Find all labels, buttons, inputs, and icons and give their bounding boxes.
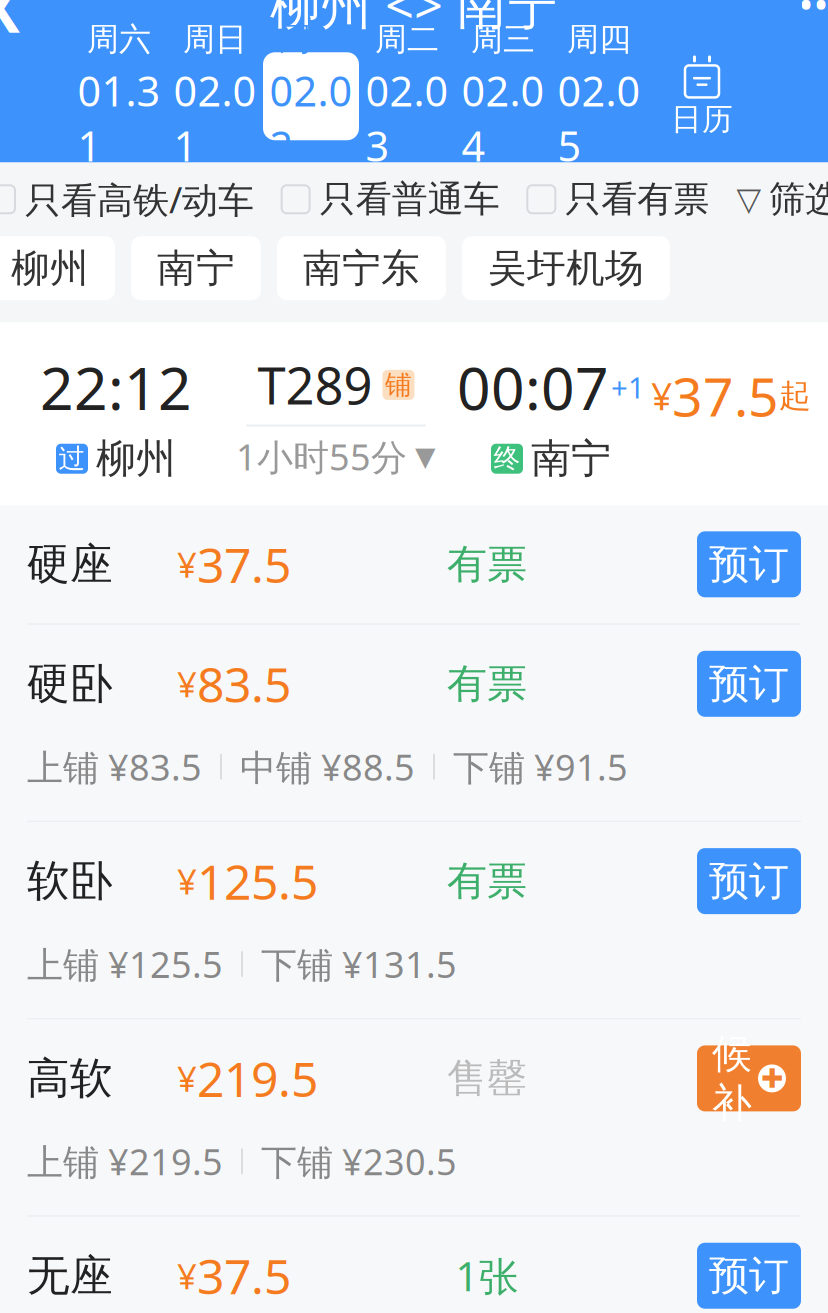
staticText: ▼ <box>415 441 436 472</box>
button[interactable]: 候补 <box>697 1045 801 1111</box>
staticText: 过 <box>58 442 85 475</box>
staticText: ❮ <box>0 0 27 31</box>
staticText: 83.5 <box>197 652 291 716</box>
button[interactable]: 周四 <box>551 52 647 140</box>
staticText: 125.5 <box>197 849 318 913</box>
staticText: T289 <box>257 351 372 418</box>
staticText: 柳州 <box>11 244 89 292</box>
staticText: 02.04 <box>461 63 544 173</box>
staticText: 周日 <box>183 20 247 59</box>
staticText: 00:07 <box>457 348 609 426</box>
staticText: 02.03 <box>365 63 448 173</box>
staticText: 有票 <box>447 857 527 906</box>
staticText: ¥ <box>177 541 197 587</box>
staticText: ••• <box>798 0 828 31</box>
staticText: 只看高铁/动车 <box>25 175 254 223</box>
staticText: 柳州 <box>96 434 176 483</box>
staticText: 售罄 <box>447 1054 527 1103</box>
staticText: 周六 <box>87 20 151 59</box>
button[interactable]: ▽ <box>737 177 828 221</box>
staticText: 周二 <box>375 20 439 59</box>
staticText: 南宁 <box>531 434 611 483</box>
staticText: 中铺 ¥88.5 <box>240 743 415 791</box>
staticText: 预订 <box>709 1251 789 1300</box>
button[interactable]: Calendar <box>647 46 757 146</box>
button[interactable]: 预订 <box>697 848 801 914</box>
staticText: ¥ <box>177 1055 197 1101</box>
staticText: ¥ <box>651 371 672 421</box>
staticText: 37.5 <box>672 360 779 431</box>
staticText: 有票 <box>447 540 527 589</box>
staticText: 22:12 <box>40 348 192 426</box>
staticText: 02.02 <box>269 63 352 173</box>
staticText: 起 <box>779 376 811 415</box>
button[interactable]: 只看普通车 <box>282 177 500 221</box>
staticText: ▽ <box>736 181 761 217</box>
staticText: 预订 <box>709 857 789 906</box>
button[interactable]: 周六 <box>71 52 167 140</box>
button[interactable]: 周日 <box>167 52 263 140</box>
staticText: 01.31 <box>77 63 160 173</box>
staticText: 终 <box>493 442 520 475</box>
staticText: 只看普通车 <box>320 177 500 221</box>
button[interactable]: More options <box>775 0 828 42</box>
staticText: 1张 <box>455 1249 518 1302</box>
staticText: 南宁 <box>157 244 235 292</box>
staticText: 只看有票 <box>565 177 709 221</box>
staticText: ¥ <box>177 858 197 904</box>
staticText: 上铺 ¥219.5 <box>27 1137 223 1185</box>
staticText: 日历 <box>671 100 733 138</box>
staticText: 219.5 <box>197 1047 318 1110</box>
staticText: 有票 <box>447 659 527 708</box>
staticText: 37.5 <box>197 1244 291 1308</box>
staticText: 上铺 ¥125.5 <box>27 940 223 988</box>
button[interactable]: 柳州 <box>0 236 115 300</box>
staticText: 周四 <box>567 20 631 59</box>
staticText: 软卧 <box>27 855 113 907</box>
button[interactable]: 预订 <box>697 651 801 717</box>
staticText: 02.05 <box>557 63 640 173</box>
staticText: 硬卧 <box>27 658 113 710</box>
button[interactable]: 预订 <box>697 531 801 597</box>
staticText: 吴圩机场 <box>488 244 644 292</box>
staticText: 预订 <box>709 659 789 708</box>
staticText: 下铺 ¥131.5 <box>261 940 457 988</box>
staticText: 南宁东 <box>303 244 420 292</box>
button[interactable]: 只看高铁/动车 <box>0 175 254 223</box>
button[interactable]: 预订 <box>697 1243 801 1309</box>
staticText: ¥ <box>177 1253 197 1299</box>
staticText: 候补 <box>712 1029 752 1128</box>
staticText: 预订 <box>709 540 789 589</box>
staticText: 筛选 <box>769 177 828 221</box>
staticText: +1 <box>611 368 645 407</box>
staticText: 上铺 ¥83.5 <box>27 743 202 791</box>
button[interactable]: 周三 <box>455 52 551 140</box>
staticText: 铺 <box>385 368 412 401</box>
button[interactable]: 周二 <box>359 52 455 140</box>
staticText: 1小时55分 <box>236 432 407 480</box>
button[interactable]: 吴圩机场 <box>462 236 670 300</box>
button[interactable]: 周一 <box>263 52 359 140</box>
staticText: 无座 <box>27 1249 113 1302</box>
button[interactable]: 只看有票 <box>527 177 709 221</box>
staticText: 下铺 ¥91.5 <box>453 743 628 791</box>
button[interactable]: 南宁 <box>131 236 261 300</box>
staticText: ¥ <box>177 661 197 707</box>
staticText: 周三 <box>471 20 535 59</box>
staticText: 37.5 <box>197 532 291 596</box>
staticText: 下铺 ¥230.5 <box>261 1137 457 1185</box>
button[interactable]: Back <box>0 0 53 42</box>
staticText: ✚ <box>761 1063 783 1094</box>
staticText: 02.01 <box>173 63 256 173</box>
staticText: 周一 <box>279 20 343 59</box>
staticText: 高软 <box>27 1052 113 1105</box>
staticText: 硬座 <box>27 538 113 590</box>
staticText: 柳州 <> 南宁 <box>270 0 558 38</box>
button[interactable]: 南宁东 <box>277 236 446 300</box>
